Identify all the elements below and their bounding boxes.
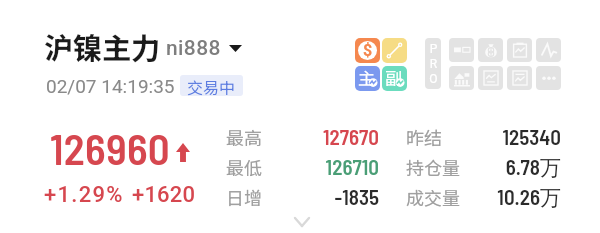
staticText: 127670 [229,124,379,149]
staticText: 成交量 [406,184,460,210]
button[interactable]: PRO [425,38,441,89]
staticText: $ [363,41,373,60]
button[interactable]: Indicators [536,38,561,62]
button[interactable]: Switch contract [224,38,246,58]
button[interactable]: 交易中 [180,75,243,96]
staticText: 日增 [226,184,262,210]
button[interactable]: Main chart [355,66,380,91]
staticText: 126960 [50,122,171,174]
staticText: 昨结 [406,124,442,150]
staticText: 126710 [229,154,379,179]
staticText: 02/07 14:19:35 [46,75,175,97]
staticText: 副 [385,66,402,90]
button[interactable]: Order book [449,38,474,62]
button[interactable]: Collapse panel [282,211,322,233]
staticText: P R O [429,42,438,86]
staticText: 持仓量 [406,154,460,180]
staticText: 6.78万 [411,154,561,181]
staticText: 交易中 [187,75,236,96]
button[interactable]: More [536,66,561,90]
staticText: ni888 [166,36,221,61]
staticText: 10.26万 [411,184,561,211]
button[interactable]: Statistics [449,66,474,90]
staticText: 最高 [226,124,262,150]
staticText: +1.29% [44,182,124,208]
button[interactable]: Announcements [507,38,532,62]
button[interactable]: Trend [478,66,503,90]
button[interactable]: Measure [382,38,407,63]
staticText: 最低 [226,154,262,180]
button[interactable]: Report [507,66,532,90]
button[interactable]: Funds flow [478,38,503,62]
staticText: -1835 [229,184,379,209]
staticText: +1620 [132,182,196,208]
button[interactable]: Funds [355,38,380,63]
staticText: 主 [358,66,375,90]
staticText: 沪镍主力 [44,25,161,67]
button[interactable]: Sub chart [382,66,407,91]
staticText: 125340 [411,124,561,149]
